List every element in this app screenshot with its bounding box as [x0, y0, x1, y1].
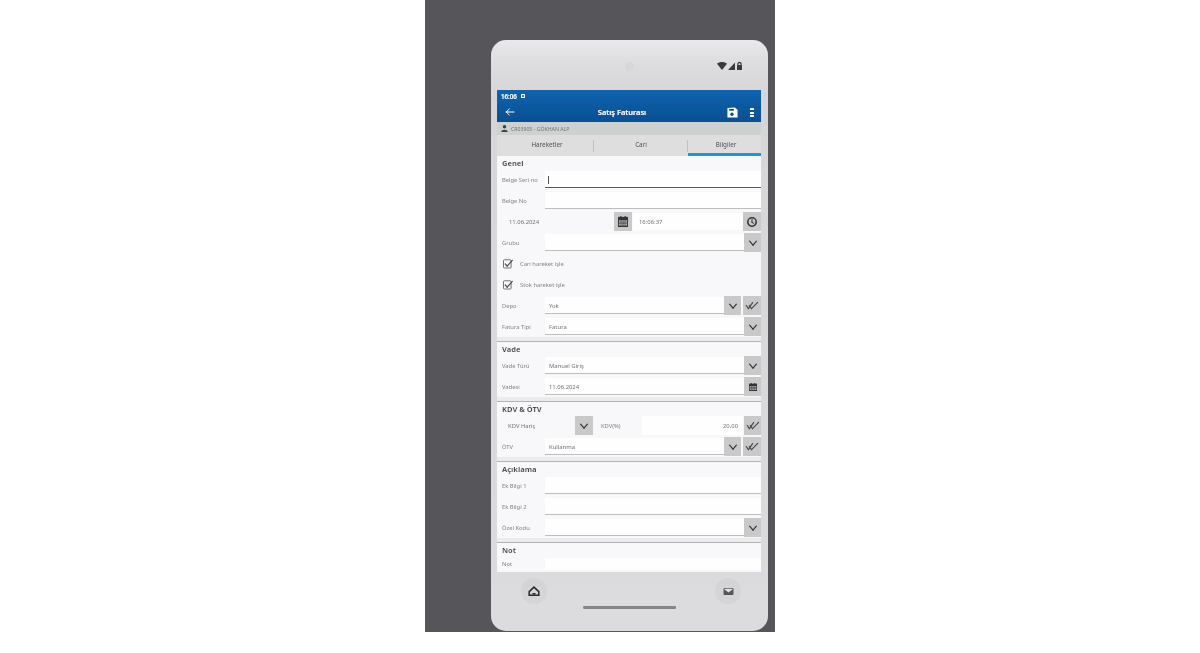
- staticText: 11.06.2024: [549, 383, 580, 391]
- staticText: KDV Hariç: [508, 422, 536, 430]
- staticText: Özel Kodu: [502, 524, 530, 532]
- staticText: Belge Seri no: [502, 176, 538, 184]
- button[interactable]: Select KDV type: [575, 416, 593, 435]
- staticText: Yok: [549, 302, 559, 310]
- button[interactable]: Grubu: [497, 232, 761, 253]
- button[interactable]: Bilgiler: [688, 135, 761, 156]
- button[interactable]: Belge Seri no: [497, 169, 761, 190]
- staticText: Not: [502, 560, 513, 568]
- button[interactable]: Cari: [594, 135, 688, 156]
- staticText: Vade Türü: [502, 362, 530, 370]
- staticText: Vadesi: [502, 383, 520, 391]
- button[interactable]: Fatura Tipi: [497, 316, 761, 337]
- button[interactable]: Pick time: [743, 212, 761, 231]
- button[interactable]: Open list: [744, 233, 761, 252]
- staticText: Depo: [502, 302, 517, 310]
- button[interactable]: Pick date: [744, 377, 761, 396]
- button[interactable]: Apply: [743, 437, 761, 456]
- button[interactable]: 11.06.2024: [497, 211, 614, 232]
- button[interactable]: CR03905 - GÖKHAN ALP: [497, 122, 761, 135]
- button[interactable]: Ek Bilgi 1: [497, 475, 761, 496]
- staticText: Stok hareket işle: [520, 281, 565, 289]
- button[interactable]: Save: [722, 102, 743, 122]
- staticText: Cari hareket işle: [520, 260, 564, 268]
- staticText: Kullanma: [549, 443, 576, 451]
- staticText: Belge No: [502, 197, 527, 205]
- button[interactable]: Messages: [715, 578, 741, 604]
- staticText: Fatura Tipi: [502, 323, 531, 331]
- staticText: Hareketler: [500, 140, 594, 149]
- button[interactable]: Not: [497, 556, 761, 572]
- staticText: Vade: [502, 344, 521, 354]
- button[interactable]: ÖTV: [497, 436, 761, 457]
- button[interactable]: Belge No: [497, 190, 761, 211]
- staticText: Fatura: [549, 323, 567, 331]
- button[interactable]: KDV Hariç: [497, 415, 575, 436]
- button[interactable]: Depo: [497, 295, 761, 316]
- staticText: 20,00: [723, 422, 739, 430]
- staticText: Genel: [502, 158, 524, 168]
- button[interactable]: Open list: [744, 518, 761, 537]
- staticText: Satış Faturası: [522, 107, 722, 117]
- staticText: CR03905 - GÖKHAN ALP: [511, 125, 570, 132]
- staticText: Not: [502, 545, 517, 555]
- button[interactable]: Open list: [744, 317, 761, 336]
- staticText: Manuel Giriş: [549, 362, 584, 370]
- button[interactable]: Özel Kodu: [497, 517, 761, 538]
- staticText: KDV & ÖTV: [502, 404, 542, 414]
- button[interactable]: Vade Türü: [497, 355, 761, 376]
- staticText: 16:06:37: [639, 218, 663, 226]
- staticText: 16:06: [501, 92, 517, 100]
- staticText: Ek Bilgi 1: [502, 482, 527, 490]
- button[interactable]: Open list: [744, 356, 761, 375]
- button[interactable]: Apply: [743, 296, 761, 315]
- button[interactable]: Vadesi: [497, 376, 761, 397]
- button[interactable]: Apply: [744, 416, 761, 435]
- staticText: Açıklama: [502, 464, 537, 474]
- button[interactable]: Stok hareket işle: [497, 274, 761, 295]
- button[interactable]: Home: [521, 578, 547, 604]
- staticText: Ek Bilgi 2: [502, 503, 527, 511]
- staticText: Cari: [594, 140, 688, 149]
- staticText: Bilgiler: [688, 140, 761, 149]
- staticText: 11.06.2024: [509, 218, 540, 226]
- button[interactable]: Open list: [724, 296, 741, 315]
- button[interactable]: 16:06:37: [633, 213, 743, 230]
- button[interactable]: Open list: [724, 437, 741, 456]
- staticText: ÖTV: [502, 443, 514, 451]
- button[interactable]: 20,00: [642, 416, 743, 435]
- button[interactable]: Pick date: [614, 212, 632, 231]
- staticText: Grubu: [502, 239, 520, 247]
- button[interactable]: Cari hareket işle: [497, 253, 761, 274]
- button[interactable]: Ek Bilgi 2: [497, 496, 761, 517]
- staticText: KDV(%): [601, 422, 621, 430]
- button[interactable]: Hareketler: [500, 135, 594, 156]
- button[interactable]: Back: [497, 102, 522, 122]
- button[interactable]: More options: [743, 102, 761, 122]
